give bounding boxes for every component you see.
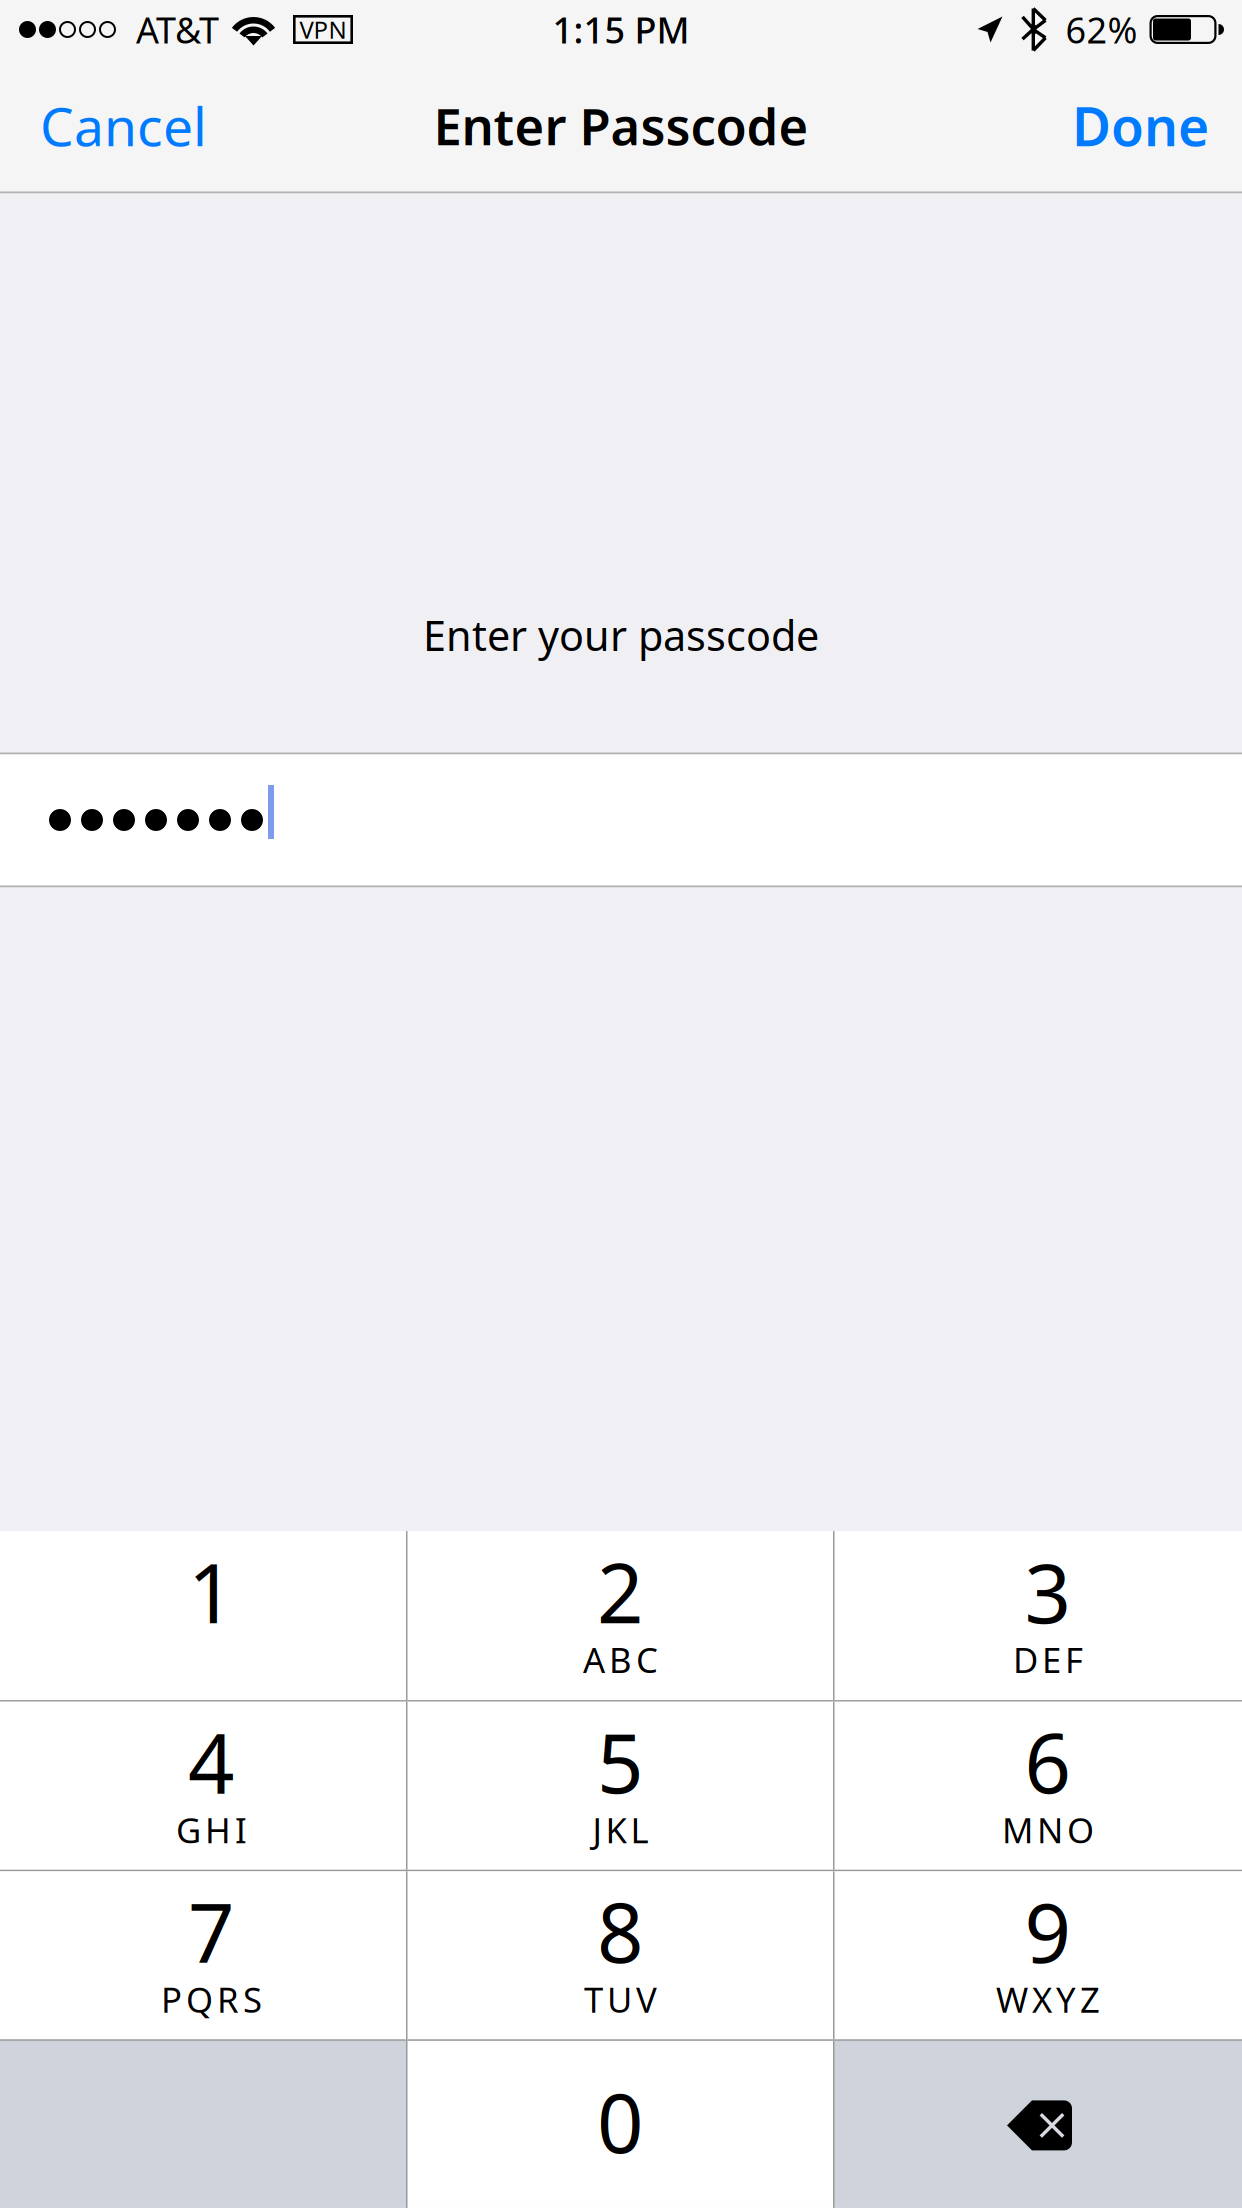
staticText: 1:15 PM	[552, 6, 689, 53]
button[interactable]: 5	[407, 1702, 834, 1870]
button[interactable]: Passcode	[0, 754, 1242, 885]
staticText: TUV	[584, 1976, 657, 2022]
staticText: Cancel	[40, 90, 207, 161]
button[interactable]: 0	[407, 2041, 834, 2208]
button[interactable]: 7	[0, 1871, 407, 2039]
staticText: 1	[188, 1538, 235, 1646]
staticText: 0	[597, 2067, 644, 2175]
staticText: Done	[1072, 90, 1209, 161]
staticText: 7	[188, 1877, 235, 1985]
staticText: VPN	[299, 14, 346, 45]
button[interactable]: 1	[0, 1531, 407, 1700]
staticText: Enter your passcode	[423, 608, 819, 662]
staticText: AT&T	[136, 6, 219, 53]
button[interactable]: 6	[834, 1702, 1242, 1870]
staticText: 8	[597, 1877, 644, 1985]
button[interactable]: 8	[407, 1871, 834, 2039]
staticText: 5	[597, 1708, 644, 1816]
button[interactable]: Cancel	[0, 59, 227, 191]
button[interactable]: Blank	[0, 2041, 407, 2208]
button[interactable]: 9	[834, 1871, 1242, 2039]
staticText: 62%	[1065, 6, 1137, 53]
staticText: 4	[188, 1708, 235, 1816]
button[interactable]: 4	[0, 1702, 407, 1870]
staticText: DEF	[1013, 1637, 1083, 1683]
button[interactable]: Done	[1052, 59, 1242, 191]
button[interactable]: 3	[834, 1531, 1242, 1700]
button[interactable]: 2	[407, 1531, 834, 1700]
button[interactable]: Delete	[834, 2041, 1242, 2208]
staticText: 9	[1024, 1877, 1071, 1985]
staticText: Enter Passcode	[433, 92, 808, 159]
staticText: PQRS	[161, 1976, 262, 2022]
staticText: JKL	[592, 1807, 648, 1853]
staticText: 3	[1024, 1538, 1071, 1646]
staticText: GHI	[176, 1807, 247, 1853]
staticText: WXYZ	[996, 1976, 1100, 2022]
staticText: 2	[597, 1538, 644, 1646]
staticText: MNO	[1002, 1807, 1094, 1853]
staticText: 6	[1024, 1708, 1071, 1816]
staticText: ABC	[583, 1637, 658, 1683]
